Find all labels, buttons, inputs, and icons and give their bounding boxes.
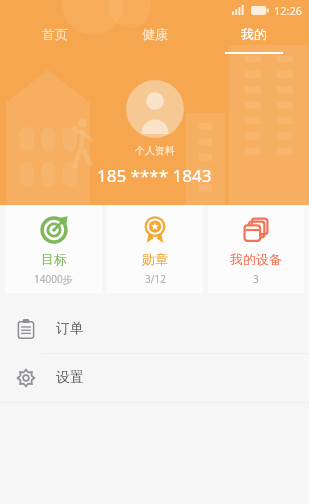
other: Orders [16, 319, 36, 339]
staticText: 14000步 [34, 272, 73, 286]
staticText: 设置 [56, 369, 84, 387]
button[interactable]: Settings [0, 354, 309, 402]
staticText: 我的设备 [230, 251, 282, 267]
staticText: 勋章 [142, 251, 168, 267]
staticText: 3/12 [145, 272, 166, 286]
staticText: 健康 [142, 26, 168, 42]
button[interactable]: 个人资料 [135, 144, 175, 157]
staticText: 订单 [56, 320, 84, 338]
button[interactable]: Orders [0, 305, 309, 353]
staticText: 185 **** 1843 [97, 164, 212, 187]
button[interactable]: 目标 [5, 205, 102, 293]
staticText: 3 [253, 272, 259, 286]
button[interactable]: 我的设备 [208, 205, 304, 293]
button[interactable]: Profile avatar [126, 80, 184, 138]
staticText: 12:26 [274, 3, 303, 18]
button[interactable]: 我的 [209, 26, 299, 54]
other: Settings [16, 368, 36, 388]
staticText: 我的 [241, 26, 267, 42]
button[interactable]: 健康 [110, 26, 200, 54]
button[interactable]: 首页 [10, 26, 100, 54]
staticText: 首页 [42, 26, 68, 42]
button[interactable]: 勋章 [107, 205, 203, 293]
staticText: 目标 [41, 251, 67, 267]
